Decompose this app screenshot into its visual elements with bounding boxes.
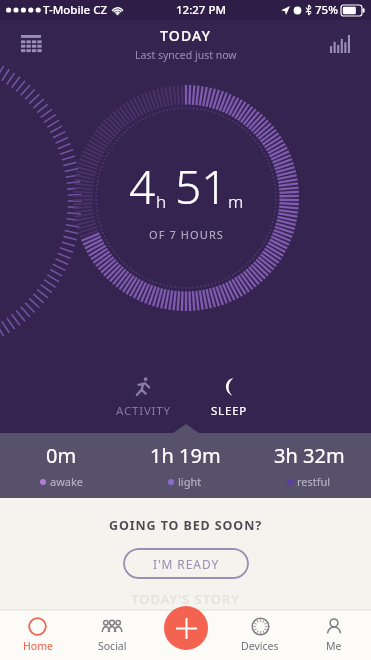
staticText: Last synced just now: [135, 48, 237, 62]
button[interactable]: I'M READY: [123, 548, 249, 579]
staticText: 12:27 PM: [176, 2, 227, 18]
staticText: restful: [297, 474, 331, 489]
button[interactable]: Devices: [223, 610, 297, 660]
staticText: 0m: [46, 442, 77, 469]
button[interactable]: Add: [164, 606, 208, 650]
staticText: 51: [175, 155, 228, 218]
staticText: Social: [98, 639, 127, 653]
staticText: m: [228, 190, 244, 213]
staticText: Home: [23, 639, 53, 653]
staticText: ACTIVITY: [116, 403, 171, 419]
staticText: I'M READY: [153, 556, 220, 572]
staticText: awake: [50, 474, 84, 489]
button[interactable]: 0m: [0, 438, 123, 493]
button[interactable]: Me: [297, 610, 371, 660]
staticText: 3h 32m: [274, 442, 345, 469]
staticText: 1h 19m: [150, 442, 221, 469]
button[interactable]: Social: [75, 610, 149, 660]
button[interactable]: ACTIVITY: [100, 374, 186, 421]
staticText: TODAY: [160, 26, 212, 45]
button[interactable]: Home: [0, 610, 75, 660]
staticText: h: [156, 190, 167, 213]
staticText: 75%: [315, 2, 338, 18]
button[interactable]: Calendar: [12, 25, 50, 63]
staticText: OF 7 HOURS: [149, 227, 224, 242]
button[interactable]: 3h 32m: [247, 438, 371, 493]
staticText: TODAY'S STORY: [131, 590, 240, 608]
staticText: 4: [129, 155, 156, 218]
staticText: GOING TO BED SOON?: [109, 517, 263, 534]
staticText: light: [178, 474, 202, 489]
button[interactable]: Statistics: [321, 25, 359, 63]
staticText: T-Mobile CZ: [43, 2, 108, 18]
staticText: SLEEP: [211, 403, 248, 419]
button[interactable]: 1h 19m: [123, 438, 247, 493]
button[interactable]: SLEEP: [186, 374, 272, 421]
staticText: Devices: [241, 639, 279, 653]
staticText: Me: [326, 639, 342, 653]
